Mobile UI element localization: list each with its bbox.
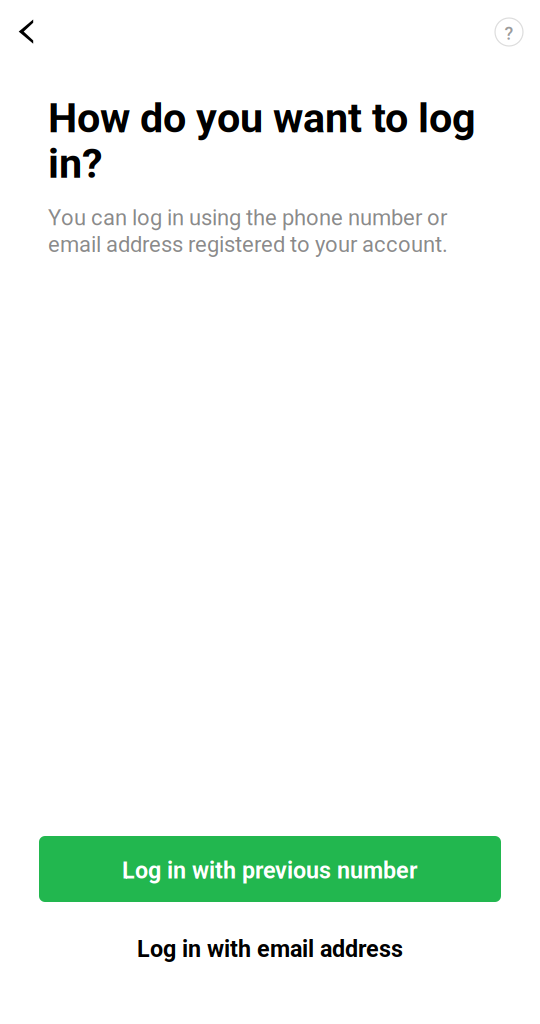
staticText: in?	[48, 139, 103, 188]
button[interactable]: Log in with email address	[39, 902, 501, 977]
button[interactable]: Log in with previous number	[39, 836, 501, 902]
staticText: ?	[504, 23, 513, 44]
staticText: How do you want to log	[48, 94, 476, 142]
staticText: You can log in using the phone number or	[48, 205, 447, 231]
staticText: Log in with email address	[137, 935, 403, 963]
staticText: Log in with previous number	[122, 857, 418, 884]
staticText: email address registered to your account…	[48, 232, 448, 257]
button[interactable]: Back	[0, 0, 48, 64]
button[interactable]: Help	[482, 0, 540, 64]
